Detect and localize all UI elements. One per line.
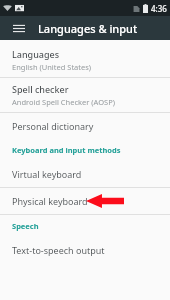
button[interactable]: Personal dictionary xyxy=(0,113,170,139)
staticText: Languages xyxy=(12,48,60,60)
button[interactable]: Navigation menu xyxy=(0,16,38,40)
staticText: Physical keyboard xyxy=(12,195,88,207)
staticText: Text-to-speech output xyxy=(12,244,105,256)
staticText: 4:36 xyxy=(151,3,167,14)
button[interactable]: Languages xyxy=(0,43,170,77)
button[interactable]: Text-to-speech output xyxy=(0,237,170,263)
staticText: Speech xyxy=(12,221,39,231)
staticText: Virtual keyboard xyxy=(12,168,82,180)
staticText: Personal dictionary xyxy=(12,120,94,132)
button[interactable]: Virtual keyboard xyxy=(0,161,170,187)
button[interactable]: Spell checker xyxy=(0,78,170,112)
staticText: Spell checker xyxy=(12,83,69,95)
staticText: Keyboard and input methods xyxy=(12,145,121,155)
staticText: Android Spell Checker (AOSP) xyxy=(12,97,115,107)
staticText: English (United States) xyxy=(12,62,92,72)
staticText: Languages & input xyxy=(38,21,138,36)
button[interactable]: Physical keyboard xyxy=(0,188,170,214)
